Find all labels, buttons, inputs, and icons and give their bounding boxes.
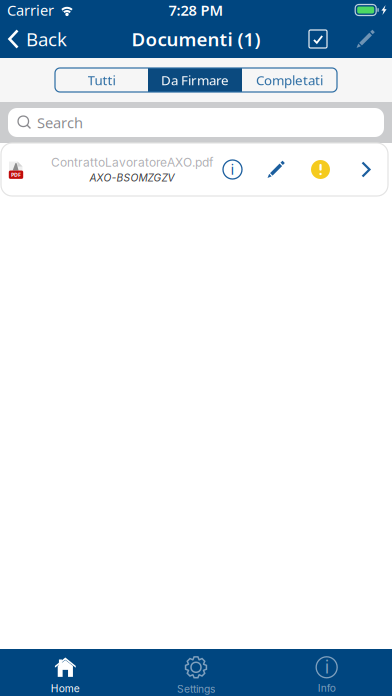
staticText: Completati — [256, 71, 323, 89]
staticText: ContrattoLavoratoreAXO.pdf — [51, 155, 213, 169]
staticText: Search — [37, 113, 83, 132]
staticText: Settings — [177, 683, 215, 695]
staticText: Da Firmare — [161, 71, 229, 89]
button[interactable]: Settings — [131, 647, 261, 696]
staticText: Back — [26, 27, 67, 51]
staticText: Home — [51, 682, 80, 695]
button[interactable]: i — [261, 648, 392, 696]
button[interactable]: Home — [0, 647, 131, 696]
button[interactable]: Tutti — [55, 68, 148, 92]
staticText: Info — [318, 682, 336, 694]
button[interactable]: PDF — [1, 143, 388, 196]
staticText: PDF — [11, 171, 21, 178]
staticText: Carrier — [7, 0, 54, 20]
button[interactable]: Edit — [338, 20, 392, 58]
staticText: AXO-BSOMZGZV — [89, 171, 174, 184]
staticText: 7:28 PM — [168, 0, 223, 20]
staticText: i — [230, 159, 234, 179]
button[interactable]: Select all — [298, 20, 338, 58]
button[interactable]: Completati — [242, 68, 337, 92]
staticText: i — [325, 655, 329, 678]
staticText: Documenti (1) — [131, 27, 260, 51]
staticText: Tutti — [87, 71, 115, 89]
button[interactable]: Back — [0, 20, 75, 58]
button[interactable]: Da Firmare — [148, 68, 242, 92]
